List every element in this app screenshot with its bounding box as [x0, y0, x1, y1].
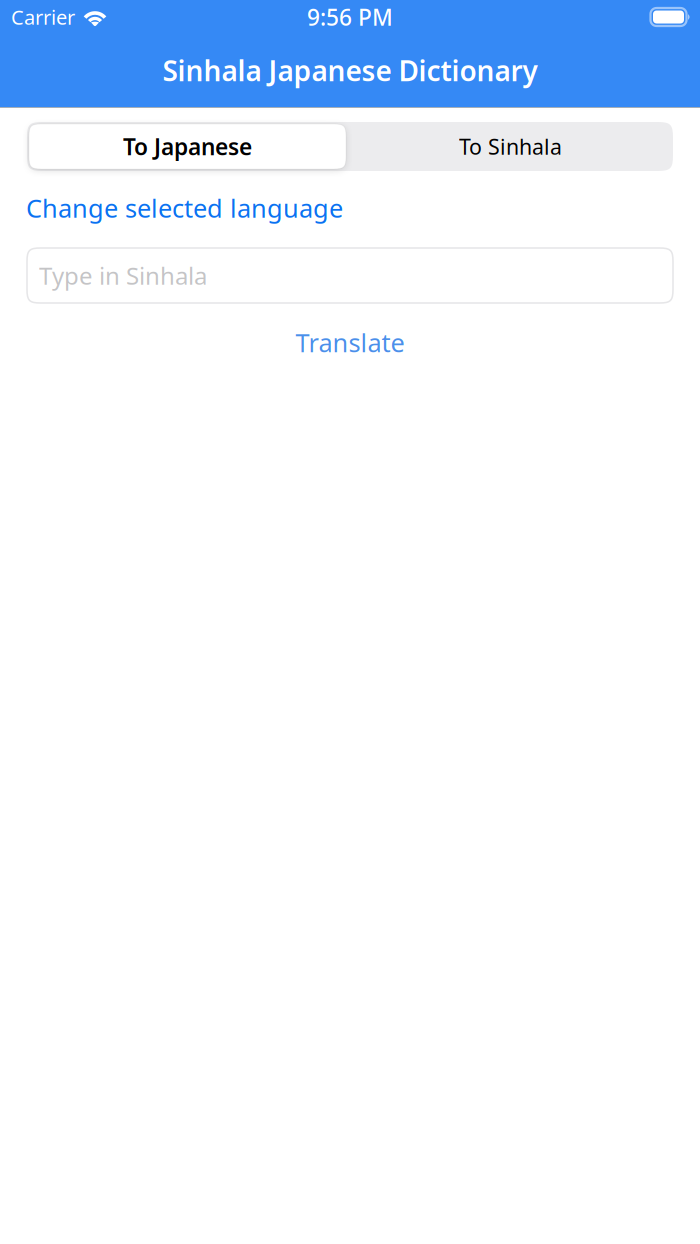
- staticText: Carrier: [11, 4, 75, 30]
- button[interactable]: Translate: [295, 329, 404, 356]
- staticText: Translate: [295, 326, 404, 359]
- staticText: Sinhala Japanese Dictionary: [162, 52, 537, 89]
- button[interactable]: To Japanese: [29, 122, 350, 171]
- staticText: Type in Sinhala: [39, 260, 207, 291]
- button[interactable]: To Sinhala: [350, 122, 671, 171]
- staticText: To Japanese: [123, 131, 252, 161]
- staticText: 9:56 PM: [307, 2, 393, 32]
- staticText: Change selected language: [26, 191, 343, 225]
- button[interactable]: Type in Sinhala: [27, 248, 673, 303]
- staticText: To Sinhala: [459, 132, 562, 161]
- button[interactable]: Change selected language: [26, 191, 343, 225]
